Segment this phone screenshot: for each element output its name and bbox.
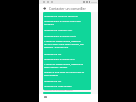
staticText: Appuyez sur NOUVEL APN: [44, 29, 73, 32]
button[interactable]: [43, 12, 91, 90]
staticText: Appuyez sur le bouton Appeler: [44, 89, 73, 92]
staticText: A l'aide du clavier virtuel, saisissez: [44, 40, 81, 43]
staticText: point d'acces : websfr: [44, 66, 68, 69]
staticText: exemple : internet SFR: [44, 46, 69, 49]
staticText: Appuyez sur OK: [44, 80, 62, 83]
staticText: sans espaces: [44, 74, 59, 77]
button[interactable]: Back: [39, 4, 49, 12]
staticText: MOBILES: [44, 23, 54, 26]
staticText: Appuyez sur TUBE Enable: [44, 85, 72, 88]
staticText: un nom pour votre point d'acces, par: [44, 43, 84, 46]
staticText: Contacter un conseiller: [49, 6, 86, 11]
staticText: Verifier si tout saisir en minuscules et: [44, 71, 85, 74]
staticText: Appuyez dans le champ DONNEES: [44, 20, 81, 23]
staticText: Appuyez sur OK: [44, 53, 62, 56]
staticText: A l'aide du clavier virtuel, saisissez l…: [44, 63, 84, 66]
staticText: Appuyez sur TOUCHE OPTIONS: [44, 15, 78, 18]
button[interactable]: [43, 92, 91, 94]
staticText: Appuyez dans le champ NOM: [44, 35, 76, 38]
staticText: Appuyez dans le champ APN: [44, 58, 75, 61]
